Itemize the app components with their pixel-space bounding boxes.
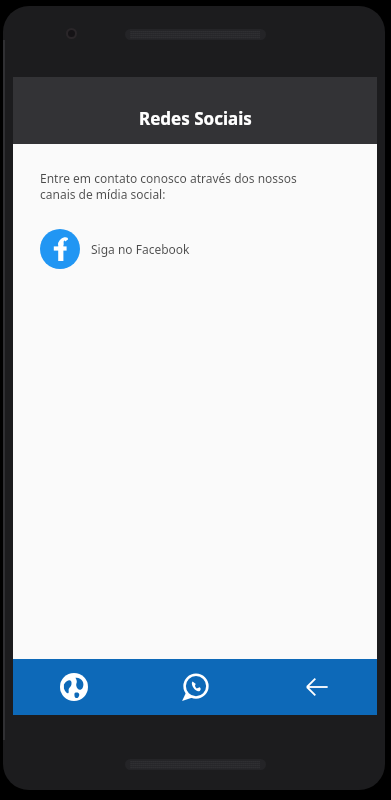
button[interactable]: Siga no Facebook	[40, 227, 206, 271]
staticText: Redes Sociais	[139, 107, 252, 130]
button[interactable]: WhatsApp	[135, 659, 256, 715]
button[interactable]: Back	[256, 659, 377, 715]
button[interactable]: Website	[13, 659, 135, 715]
staticText: Siga no Facebook	[91, 241, 190, 257]
staticText: Entre em contato conosco através dos nos…	[40, 170, 297, 202]
